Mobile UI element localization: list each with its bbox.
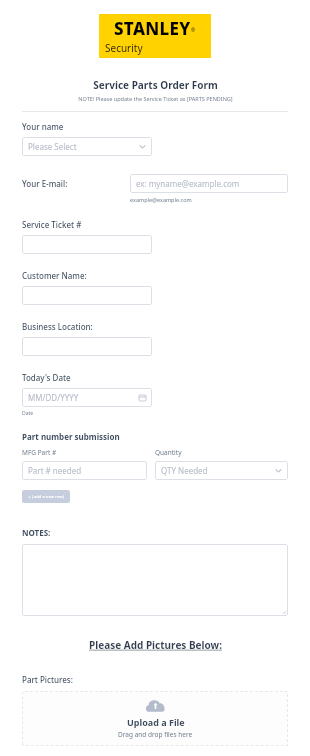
button[interactable]: Please Select bbox=[22, 137, 152, 156]
staticText: Part number submission bbox=[22, 431, 120, 442]
staticText: Drag and drop files here bbox=[118, 730, 193, 739]
staticText: Upload a File bbox=[127, 716, 185, 728]
staticText: example@example.com bbox=[130, 196, 192, 203]
staticText: Your name bbox=[22, 121, 64, 132]
button[interactable]: QTY Needed bbox=[155, 461, 288, 480]
staticText: Service Parts Order Form bbox=[93, 78, 218, 92]
staticText: QTY Needed bbox=[161, 465, 208, 476]
staticText: Today's Date bbox=[22, 372, 71, 383]
button[interactable]: ex: myname@example.com bbox=[130, 174, 288, 193]
button[interactable]: + |add a new row| bbox=[22, 490, 70, 503]
button[interactable] bbox=[22, 337, 152, 356]
staticText: Quantity bbox=[155, 448, 182, 457]
button[interactable]: MM/DD/YYYY bbox=[22, 388, 152, 407]
staticText: MM/DD/YYYY bbox=[28, 392, 79, 403]
staticText: Your E-mail: bbox=[22, 178, 68, 189]
staticText: Customer Name: bbox=[22, 270, 87, 281]
staticText: Part # needed bbox=[28, 465, 82, 476]
button[interactable] bbox=[22, 235, 152, 254]
staticText: + |add a new row| bbox=[28, 494, 65, 500]
staticText: NOTE! Please update the Service Ticket a… bbox=[78, 95, 233, 102]
staticText: NOTES: bbox=[22, 527, 51, 538]
staticText: MFG Part # bbox=[22, 448, 57, 457]
button[interactable] bbox=[22, 286, 152, 305]
staticText: Please Select bbox=[28, 141, 77, 152]
button[interactable]: Part # needed bbox=[22, 461, 147, 480]
button[interactable] bbox=[22, 544, 288, 616]
staticText: Please Add Pictures Below: bbox=[89, 638, 222, 652]
button[interactable]: Upload a File bbox=[22, 691, 288, 746]
staticText: Date bbox=[22, 410, 34, 417]
staticText: STANLEY bbox=[114, 17, 191, 40]
staticText: Service Ticket # bbox=[22, 219, 82, 230]
staticText: ex: myname@example.com bbox=[136, 178, 240, 189]
staticText: Part Pictures: bbox=[22, 674, 73, 685]
staticText: Security bbox=[105, 41, 143, 55]
staticText: Business Location: bbox=[22, 321, 93, 332]
staticText: ® bbox=[191, 27, 196, 34]
